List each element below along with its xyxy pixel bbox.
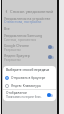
button[interactable]: Яндекс Клавиатура <box>3 82 56 90</box>
button[interactable]: Google Chrome <box>2 42 57 52</box>
staticText: Яндекс Браузер <box>4 53 30 58</box>
staticText: Google Chrome <box>4 43 30 48</box>
button[interactable]: Отображение уведомлений <box>3 90 56 100</box>
button[interactable]: Открывать в браузере <box>3 74 56 82</box>
staticText: Список уведомлений <box>10 9 54 15</box>
staticText: Яндекс Клавиатура <box>11 84 41 88</box>
staticText: Статистика, настройки <box>4 19 42 24</box>
button[interactable]: Back <box>3 8 10 15</box>
staticText: Уведомления на устройстве <box>4 16 51 21</box>
staticText: Система, приложения <box>4 38 37 42</box>
staticText: Открывать в браузере <box>11 76 46 80</box>
staticText: Все <box>4 26 10 31</box>
staticText: Отображение уведомлений <box>6 91 47 95</box>
staticText: Показывать на экране блок. <box>6 95 42 99</box>
staticText: Уведомления Samsung <box>4 33 43 38</box>
staticText: Разрешены <box>4 58 21 62</box>
button[interactable]: Уведомления Samsung <box>2 32 57 42</box>
button[interactable]: Статистика, настройки <box>4 19 42 24</box>
staticText: Выберите способ передачи <box>6 68 50 72</box>
button[interactable]: Яндекс Браузер <box>2 52 57 62</box>
staticText: Разрешены <box>4 48 21 52</box>
